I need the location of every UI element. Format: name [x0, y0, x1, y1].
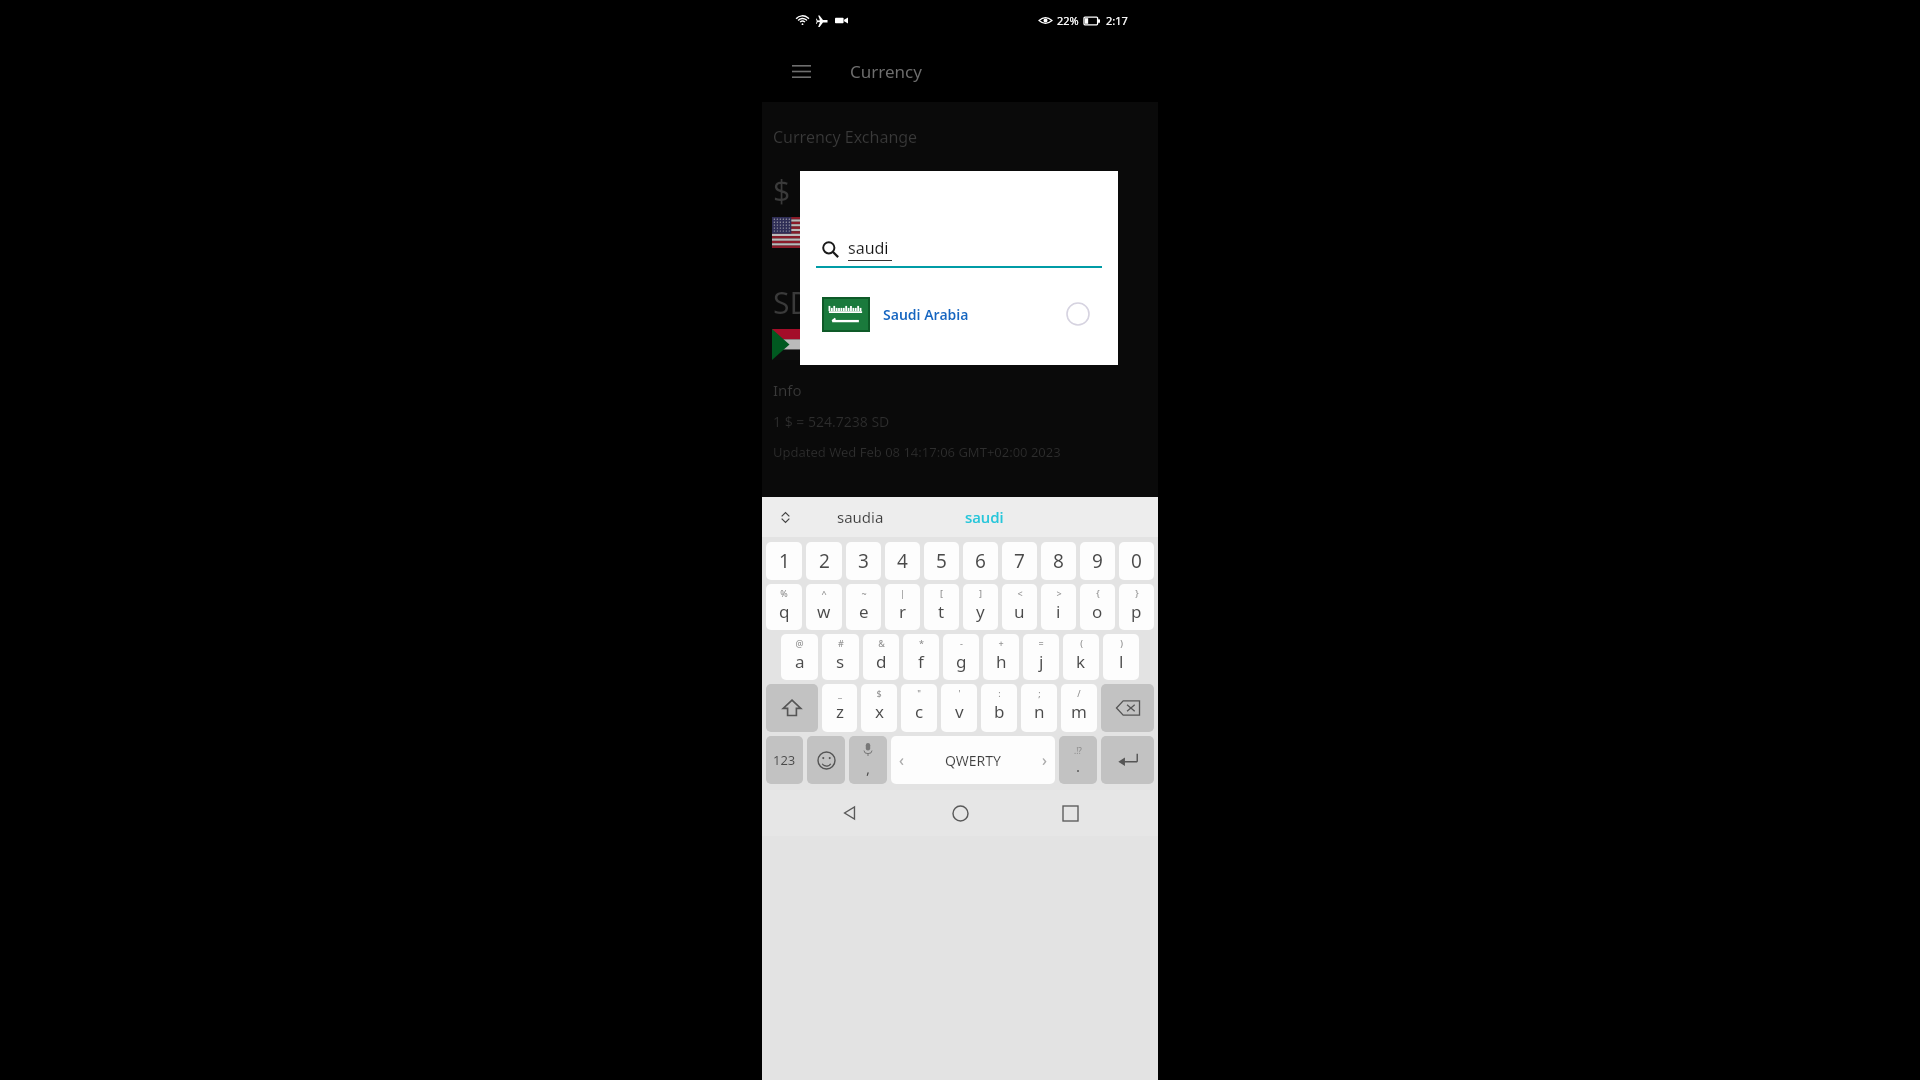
button[interactable]: * [903, 634, 939, 680]
button[interactable]: SD [762, 282, 1158, 360]
button[interactable]: Numbers [766, 736, 803, 784]
button[interactable]: Recent apps [1048, 791, 1092, 835]
staticText: Saudi Arabia [883, 305, 969, 324]
button[interactable]: Shift [766, 684, 818, 732]
button[interactable]: saudia [798, 497, 922, 537]
staticText: w [817, 600, 831, 623]
button[interactable]: 0 [1119, 542, 1154, 580]
staticText: 5 [936, 548, 947, 574]
staticText: _ [838, 687, 842, 699]
button[interactable]: QWERTY [891, 736, 1055, 784]
staticText: h [996, 650, 1007, 673]
button[interactable]: 6 [963, 542, 998, 580]
staticText: $ [773, 170, 791, 211]
button[interactable]: ' [941, 684, 977, 732]
staticText: m [1071, 700, 1087, 723]
button[interactable]: ( [1063, 634, 1099, 680]
staticText: v [955, 700, 964, 723]
button[interactable]: 4 [885, 542, 920, 580]
button[interactable]: saudi [922, 497, 1046, 537]
staticText: n [1034, 700, 1045, 723]
button[interactable]: Expand suggestions [772, 504, 798, 530]
staticText: ) [1120, 637, 1123, 649]
button[interactable]: [ [924, 584, 959, 630]
staticText: ; [1038, 687, 1041, 699]
button[interactable]: 2 [806, 542, 842, 580]
staticText: [ [940, 587, 943, 599]
staticText: { [1096, 587, 1100, 599]
button[interactable]: 1 [766, 542, 802, 580]
button[interactable]: 5 [924, 542, 959, 580]
staticText: * [919, 637, 924, 649]
button[interactable]: $ [861, 684, 897, 732]
button[interactable]: - [943, 634, 979, 680]
staticText: = [1038, 637, 1044, 649]
staticText: e [859, 600, 869, 623]
staticText: 3 [858, 548, 869, 574]
button[interactable]: + [983, 634, 1019, 680]
button[interactable]: ~ [846, 584, 881, 630]
staticText: - [960, 637, 963, 649]
staticText: t [938, 600, 945, 623]
button[interactable]: 7 [1002, 542, 1037, 580]
button[interactable]: Backspace [1101, 684, 1154, 732]
staticText: / [1077, 687, 1081, 699]
button[interactable]: 8 [1041, 542, 1076, 580]
staticText: i [1056, 600, 1061, 623]
staticText: a [795, 650, 805, 673]
staticText: SD [773, 282, 812, 323]
staticText: ^ [821, 587, 827, 599]
staticText: 1 [779, 548, 790, 574]
staticText: 6 [975, 548, 986, 574]
button[interactable]: % [766, 584, 802, 630]
staticText: c [915, 700, 924, 723]
button[interactable]: _ [822, 684, 857, 732]
button[interactable]: @ [781, 634, 818, 680]
staticText: Currency Exchange [773, 126, 918, 148]
staticText: ( [1080, 637, 1083, 649]
button[interactable]: = [1023, 634, 1059, 680]
button[interactable]: > [1041, 584, 1076, 630]
button[interactable]: $ [762, 170, 1158, 248]
button[interactable]: ^ [806, 584, 842, 630]
button[interactable]: Saudi Arabia [800, 287, 1118, 341]
button[interactable]: Voice input or comma [849, 736, 887, 784]
button[interactable]: 9 [1080, 542, 1115, 580]
staticText: .!? [1074, 745, 1082, 756]
button[interactable]: { [1080, 584, 1115, 630]
button[interactable]: Symbols [1059, 736, 1097, 784]
staticText: < [1017, 587, 1023, 599]
staticText: saudi [965, 507, 1004, 527]
button[interactable]: saudi [822, 237, 1096, 261]
staticText: QWERTY [945, 751, 1002, 770]
staticText: 9 [1092, 548, 1103, 574]
button[interactable]: Emoji [807, 736, 845, 784]
button[interactable]: ) [1103, 634, 1139, 680]
button[interactable]: & [863, 634, 899, 680]
button[interactable]: Enter [1101, 736, 1154, 784]
staticText: p [1131, 600, 1142, 623]
staticText: Currency [850, 60, 922, 83]
button[interactable]: Home [938, 791, 982, 835]
button[interactable]: < [1002, 584, 1037, 630]
button[interactable]: ; [1021, 684, 1057, 732]
button[interactable]: Back [828, 791, 872, 835]
staticText: q [779, 600, 790, 623]
staticText: ' [958, 687, 961, 699]
button[interactable]: | [885, 584, 920, 630]
staticText: saudi [848, 237, 889, 259]
staticText: ] [979, 587, 982, 599]
staticText: 2 [819, 548, 830, 574]
staticText: z [836, 700, 844, 723]
button[interactable]: Open navigation menu [780, 50, 822, 92]
button[interactable]: } [1119, 584, 1154, 630]
button[interactable]: 3 [846, 542, 881, 580]
button[interactable]: " [901, 684, 937, 732]
staticText: f [918, 650, 924, 673]
button[interactable]: ] [963, 584, 998, 630]
staticText: x [875, 700, 884, 723]
staticText: " [917, 687, 921, 699]
button[interactable]: : [981, 684, 1017, 732]
button[interactable]: # [822, 634, 859, 680]
button[interactable]: / [1061, 684, 1097, 732]
